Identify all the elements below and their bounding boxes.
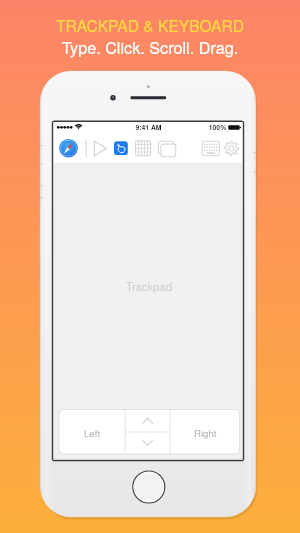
button[interactable]: Scroll up [125,410,170,433]
button[interactable]: Keyboard [202,141,220,156]
staticText: 100% [208,122,227,132]
button[interactable]: Left [59,410,125,455]
button[interactable]: Home [132,470,165,503]
staticText: Left [84,426,101,440]
staticText: 9:41 AM [130,122,167,132]
staticText: TRACKPAD & KEYBOARD [0,14,300,36]
staticText: Trackpad [126,278,173,294]
staticText: Right [194,426,217,440]
button[interactable]: Settings [223,141,238,156]
button[interactable]: Scroll down [125,432,170,454]
button[interactable]: Trackpad mode [114,141,128,155]
button[interactable]: Right [170,410,240,455]
staticText: Type. Click. Scroll. Drag. [0,35,300,58]
button[interactable]: Grid [136,141,151,156]
button[interactable]: Safari [59,139,78,158]
button[interactable]: Tabs [158,141,178,156]
button[interactable]: Play [91,139,110,158]
button[interactable]: Trackpad [53,164,243,410]
